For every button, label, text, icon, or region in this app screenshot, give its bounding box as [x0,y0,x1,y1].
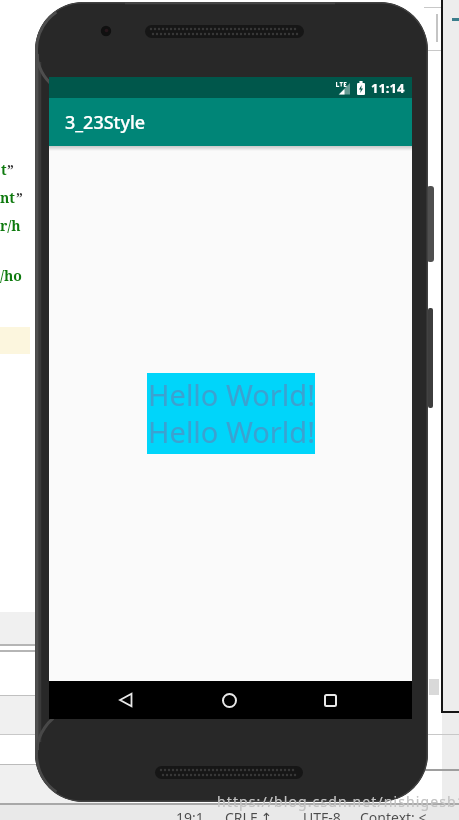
staticText: ” [16,188,23,207]
button[interactable] [209,681,250,719]
button[interactable] [310,681,350,719]
staticText: 3_23Style [65,110,146,135]
staticText: Context: < [360,808,427,820]
staticText: ” [7,160,14,179]
staticText: 11:14 [371,79,405,97]
staticText: r/h [0,216,21,235]
button[interactable] [106,681,146,719]
staticText: /ho [0,266,22,285]
staticText: UTF-8 [303,808,341,820]
staticText: 19:1 [176,808,204,820]
staticText: Hello World! Hello World! [148,375,315,452]
staticText: CRLF ↑ [225,808,273,820]
staticText: nt [0,188,16,207]
staticText: https://blog.csdn.net/nishigesb123 [217,792,459,811]
button[interactable]: Hello World! Hello World! [147,373,315,454]
staticText: t [1,160,7,179]
